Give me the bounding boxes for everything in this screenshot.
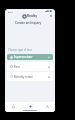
staticText: In-person tour (14, 55, 33, 59)
button[interactable]: Monthly rental (7, 72, 53, 81)
staticText: Choose type of tour (8, 48, 33, 52)
button[interactable]: Profile (43, 102, 51, 110)
staticText: 9:41 (8, 10, 13, 13)
staticText: Create an Inquiry (15, 21, 55, 25)
button[interactable]: In-person tour (7, 54, 53, 60)
button[interactable]: Home (9, 102, 17, 110)
staticText: Monthly rental (14, 75, 33, 79)
button[interactable]: Rent (7, 62, 53, 71)
staticText: Realty (27, 14, 38, 18)
button[interactable]: Expand menu (49, 14, 53, 18)
staticText: Rent (14, 65, 20, 69)
button[interactable]: Add inquiry (26, 102, 34, 110)
